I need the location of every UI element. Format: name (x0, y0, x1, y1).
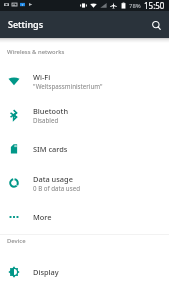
button[interactable]: Wi-Fi (0, 64, 169, 98)
button[interactable]: Data usage (0, 166, 169, 200)
staticText: Device (7, 237, 26, 245)
button[interactable]: SIM cards (0, 132, 169, 166)
staticText: 0 B of data used (33, 184, 80, 192)
staticText: Disabled (33, 116, 59, 124)
staticText: Data usage (33, 174, 73, 184)
button[interactable]: Display (0, 255, 169, 289)
staticText: Bluetooth (33, 106, 69, 116)
staticText: Wireless & networks (7, 48, 65, 56)
staticText: Display (33, 267, 59, 277)
button[interactable]: Search (146, 15, 166, 35)
button[interactable]: More (0, 200, 169, 234)
staticText: Wi-Fi (33, 72, 51, 82)
button[interactable]: Bluetooth (0, 98, 169, 132)
staticText: 78% (129, 2, 141, 10)
staticText: SIM cards (33, 144, 68, 154)
staticText: "Weltspassministerium" (33, 82, 103, 90)
staticText: Settings (8, 18, 44, 30)
staticText: More (33, 212, 52, 222)
staticText: 15:50 (144, 0, 165, 11)
